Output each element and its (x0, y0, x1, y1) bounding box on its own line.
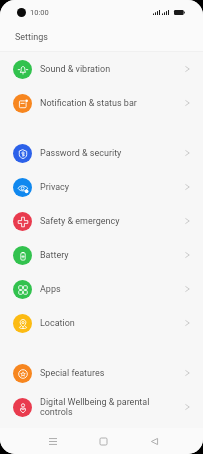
button[interactable]: Sound & vibration (0, 52, 203, 86)
staticText: 10:00 (30, 8, 49, 17)
staticText: Sound & vibration (40, 64, 181, 75)
staticText: Special features (40, 368, 181, 379)
button[interactable]: Privacy (0, 170, 203, 204)
button[interactable]: Special features (0, 356, 203, 390)
button[interactable]: Battery (0, 238, 203, 272)
button[interactable]: Notification & status bar (0, 86, 203, 120)
button[interactable]: Password & security (0, 136, 203, 170)
button[interactable]: Back (129, 428, 180, 454)
button[interactable]: Apps (0, 272, 203, 306)
button[interactable]: Digital Wellbeing & parental controls (0, 390, 203, 424)
staticText: Battery (40, 250, 181, 261)
button[interactable]: Safety & emergency (0, 204, 203, 238)
staticText: Notification & status bar (40, 98, 181, 109)
staticText: Password & security (40, 148, 181, 159)
staticText: Location (40, 318, 181, 329)
staticText: Digital Wellbeing & parental controls (40, 397, 181, 417)
staticText: Settings (15, 32, 48, 43)
staticText: Safety & emergency (40, 216, 181, 227)
button[interactable]: Home (78, 428, 129, 454)
button[interactable]: Recent apps (27, 428, 78, 454)
staticText: Apps (40, 284, 181, 295)
button[interactable]: Location (0, 306, 203, 340)
staticText: Privacy (40, 182, 181, 193)
